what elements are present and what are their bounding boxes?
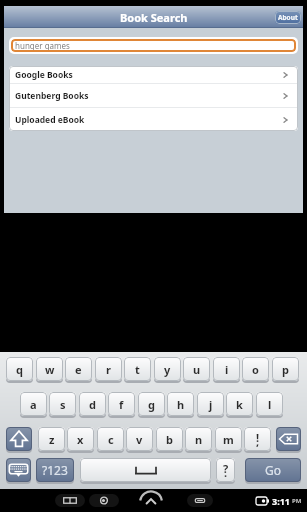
staticText: Book Search (120, 10, 188, 25)
staticText: s (60, 397, 66, 412)
staticText: PM (292, 497, 302, 505)
button[interactable]: Space (80, 458, 211, 482)
staticText: l (268, 397, 272, 412)
button[interactable]: a (20, 392, 47, 416)
staticText: q (16, 362, 23, 377)
staticText: y (164, 362, 171, 377)
button[interactable]: n (185, 427, 212, 451)
staticText: h (177, 397, 185, 412)
staticText: Gutenberg Books (15, 90, 89, 102)
staticText: x (77, 432, 84, 447)
staticText: n (195, 432, 203, 447)
button[interactable]: m (215, 427, 242, 451)
staticText: b (166, 432, 173, 447)
staticText: Go (265, 462, 281, 478)
button[interactable]: g (138, 392, 165, 416)
staticText: g (148, 397, 155, 412)
staticText: a (30, 397, 37, 412)
button[interactable]: Menu (133, 490, 169, 510)
staticText: Uploaded eBook (15, 114, 85, 126)
staticText: 3:11 (272, 495, 290, 507)
button[interactable]: u (183, 357, 210, 381)
staticText: v (136, 432, 143, 447)
button[interactable]: o (242, 357, 269, 381)
staticText: z (49, 432, 55, 447)
button[interactable]: p (272, 357, 299, 381)
button[interactable]: Gutenberg Books (9, 84, 298, 107)
button[interactable]: l (256, 392, 283, 416)
button[interactable]: e (65, 357, 92, 381)
staticText: , (256, 434, 260, 449)
staticText: d (89, 397, 96, 412)
button[interactable]: h (167, 392, 194, 416)
button[interactable]: Google Books (9, 66, 298, 83)
button[interactable]: z (38, 427, 65, 451)
staticText: . (224, 465, 228, 480)
button[interactable]: t (124, 357, 151, 381)
button[interactable]: x (67, 427, 94, 451)
staticText: ! (256, 430, 260, 445)
staticText: p (282, 362, 289, 377)
staticText: hunger games (15, 40, 70, 51)
staticText: i (225, 362, 229, 377)
button[interactable]: v (126, 427, 153, 451)
button[interactable]: ! (244, 427, 271, 451)
button[interactable]: j (197, 392, 224, 416)
staticText: r (106, 362, 111, 377)
button[interactable]: i (213, 357, 240, 381)
staticText: Google Books (15, 69, 73, 81)
button[interactable]: Home (89, 494, 119, 507)
button[interactable]: Shift (6, 427, 32, 451)
button[interactable]: ?123 (36, 458, 74, 482)
button[interactable]: r (95, 357, 122, 381)
button[interactable]: Recent apps (187, 494, 213, 507)
button[interactable]: q (6, 357, 33, 381)
button[interactable]: y (154, 357, 181, 381)
button[interactable]: f (108, 392, 135, 416)
button[interactable]: s (49, 392, 76, 416)
staticText: k (236, 397, 243, 412)
button[interactable]: c (97, 427, 124, 451)
button[interactable]: About (275, 11, 301, 24)
staticText: ?123 (42, 462, 68, 478)
button[interactable]: Switch keyboard (6, 458, 31, 482)
staticText: e (75, 362, 82, 377)
staticText: c (108, 432, 114, 447)
staticText: ? (223, 461, 229, 476)
button[interactable]: Go (245, 458, 301, 482)
staticText: t (135, 362, 140, 377)
staticText: o (252, 362, 259, 377)
staticText: m (223, 432, 234, 447)
staticText: u (193, 362, 201, 377)
button[interactable]: ? (216, 458, 235, 482)
button[interactable]: Back (55, 494, 85, 507)
button[interactable]: k (226, 392, 253, 416)
staticText: About (278, 13, 298, 22)
staticText: w (45, 362, 55, 377)
button[interactable]: w (36, 357, 63, 381)
button[interactable]: hunger games (9, 37, 298, 54)
staticText: j (209, 397, 213, 412)
button[interactable]: d (79, 392, 106, 416)
button[interactable]: Uploaded eBook (9, 108, 298, 131)
button[interactable]: b (156, 427, 183, 451)
button[interactable]: Delete (276, 427, 301, 451)
staticText: f (119, 397, 124, 412)
